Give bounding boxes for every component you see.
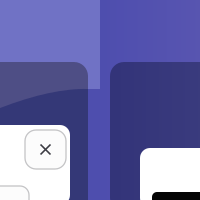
- button[interactable]: Continue: [152, 192, 200, 200]
- button[interactable]: More options: [0, 186, 29, 200]
- button[interactable]: Close: [25, 130, 66, 169]
